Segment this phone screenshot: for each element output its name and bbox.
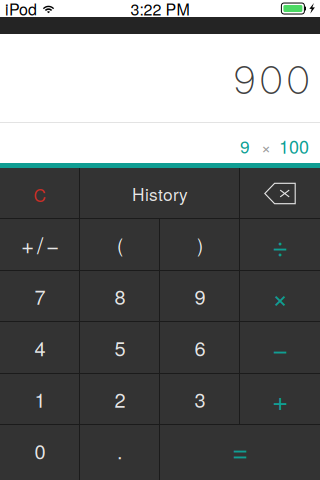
staticText: 7 <box>34 282 45 310</box>
staticText: ) <box>197 231 203 258</box>
staticText: 9 <box>194 282 205 310</box>
staticText: 6 <box>194 333 205 362</box>
staticText: 9 <box>240 134 257 158</box>
staticText: × <box>261 134 271 158</box>
staticText: 900 <box>234 57 309 103</box>
button[interactable]: 3 <box>160 373 240 425</box>
staticText: 8 <box>114 282 125 310</box>
button[interactable]: 4 <box>0 322 80 373</box>
staticText: 2 <box>114 385 125 413</box>
button[interactable]: 2 <box>80 373 160 425</box>
button[interactable]: History <box>80 168 240 219</box>
staticText: × <box>272 276 288 316</box>
staticText: 4 <box>34 333 45 362</box>
button[interactable]: 9 <box>160 270 240 322</box>
button[interactable]: ) <box>160 219 240 270</box>
staticText: 1 <box>34 385 45 413</box>
staticText: ( <box>117 231 123 258</box>
button[interactable]: 5 <box>80 322 160 373</box>
staticText: ÷ <box>272 224 288 265</box>
button[interactable]: × <box>240 270 320 322</box>
button[interactable]: ÷ <box>240 219 320 270</box>
button[interactable]: 0 <box>0 425 80 480</box>
staticText: = <box>232 429 248 470</box>
staticText: . <box>117 436 123 465</box>
button[interactable]: = <box>160 425 320 480</box>
staticText: + <box>272 379 288 419</box>
button[interactable]: +/− <box>0 219 80 270</box>
staticText: 3 <box>194 385 205 413</box>
button[interactable]: 8 <box>80 270 160 322</box>
staticText: 3:22 PM <box>130 0 189 20</box>
button[interactable]: 6 <box>160 322 240 373</box>
staticText: 100 <box>279 133 309 159</box>
staticText: 0 <box>34 436 45 465</box>
button[interactable]: Delete <box>240 168 320 219</box>
button[interactable]: 1 <box>0 373 80 425</box>
staticText: C <box>33 182 46 207</box>
staticText: History <box>132 181 188 206</box>
staticText: iPod <box>5 0 37 20</box>
button[interactable]: − <box>240 322 320 373</box>
button[interactable]: C <box>0 168 80 219</box>
staticText: − <box>272 327 288 368</box>
button[interactable]: 7 <box>0 270 80 322</box>
button[interactable]: + <box>240 373 320 425</box>
staticText: 5 <box>114 333 125 362</box>
button[interactable]: . <box>80 425 160 480</box>
button[interactable]: ( <box>80 219 160 270</box>
staticText: +/− <box>21 228 59 261</box>
